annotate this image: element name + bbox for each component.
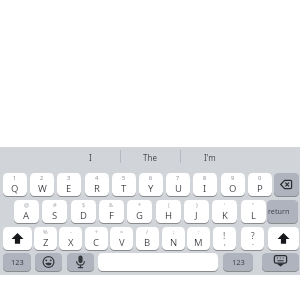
staticText: + xyxy=(95,228,99,235)
button[interactable]: 5 xyxy=(112,173,136,196)
staticText: D xyxy=(80,209,87,222)
staticText: - xyxy=(70,228,72,235)
button[interactable]: I'm xyxy=(182,148,238,166)
button[interactable]: * xyxy=(127,200,152,223)
button[interactable] xyxy=(98,253,218,271)
staticText: " xyxy=(252,201,255,208)
button[interactable]: $ xyxy=(71,200,96,223)
staticText: / xyxy=(146,228,149,235)
button[interactable]: ( xyxy=(156,200,181,223)
staticText: % xyxy=(43,228,48,235)
staticText: M xyxy=(194,236,203,249)
staticText: P xyxy=(257,182,263,195)
staticText: I xyxy=(89,152,92,163)
staticText: N xyxy=(170,236,178,249)
staticText: O xyxy=(229,182,237,195)
button[interactable]: @ xyxy=(14,200,39,223)
staticText: G xyxy=(136,209,143,222)
button[interactable]: 123 xyxy=(223,253,253,271)
button[interactable]: The xyxy=(122,148,178,166)
button[interactable]: # xyxy=(42,200,67,223)
staticText: I xyxy=(203,182,207,195)
button[interactable]: + xyxy=(85,227,108,250)
button[interactable] xyxy=(67,253,94,271)
staticText: T xyxy=(121,182,127,195)
staticText: & xyxy=(109,201,114,208)
button[interactable] xyxy=(268,227,299,250)
staticText: 5 xyxy=(122,174,126,181)
staticText: # xyxy=(53,201,57,208)
button[interactable]: 0 xyxy=(248,173,272,196)
staticText: @ xyxy=(24,201,29,208)
staticText: 4 xyxy=(95,174,99,181)
button[interactable]: 4 xyxy=(85,173,109,196)
staticText: . xyxy=(252,238,254,248)
button[interactable] xyxy=(3,227,32,250)
staticText: I'm xyxy=(204,152,216,163)
staticText: F xyxy=(109,209,114,222)
staticText: 0 xyxy=(258,174,262,181)
staticText: The xyxy=(143,152,157,163)
button[interactable]: = xyxy=(110,227,133,250)
button[interactable]: - xyxy=(59,227,82,250)
button[interactable]: ? xyxy=(241,227,264,250)
staticText: J xyxy=(195,209,198,222)
staticText: : xyxy=(198,228,200,235)
staticText: A xyxy=(23,209,30,222)
button[interactable]: / xyxy=(136,227,159,250)
staticText: W xyxy=(38,182,47,195)
staticText: ( xyxy=(168,201,170,208)
button[interactable]: : xyxy=(187,227,210,250)
staticText: ! xyxy=(223,230,226,242)
staticText: ' xyxy=(224,201,226,208)
staticText: X xyxy=(68,236,74,249)
staticText: 9 xyxy=(231,174,235,181)
staticText: K xyxy=(222,209,228,222)
staticText: ? xyxy=(251,230,255,242)
staticText: * xyxy=(138,201,142,208)
button[interactable]: 7 xyxy=(166,173,190,196)
button[interactable]: ) xyxy=(184,200,209,223)
staticText: S xyxy=(52,209,58,222)
staticText: return xyxy=(268,206,290,216)
staticText: 3 xyxy=(67,174,71,181)
staticText: Y xyxy=(148,182,154,195)
button[interactable]: return xyxy=(267,200,298,223)
button[interactable]: ; xyxy=(162,227,185,250)
button[interactable]: 6 xyxy=(139,173,163,196)
button[interactable]: 123 xyxy=(3,253,31,271)
button[interactable] xyxy=(35,253,62,271)
button[interactable]: 9 xyxy=(221,173,245,196)
staticText: H xyxy=(165,209,173,222)
staticText: ) xyxy=(196,201,198,208)
staticText: 123 xyxy=(11,257,24,267)
button[interactable]: ' xyxy=(212,200,237,223)
staticText: 7 xyxy=(176,174,180,181)
staticText: ; xyxy=(173,228,175,235)
staticText: E xyxy=(66,182,72,195)
button[interactable]: 8 xyxy=(193,173,217,196)
button[interactable]: ! xyxy=(213,227,236,250)
staticText: B xyxy=(144,236,151,249)
staticText: 123 xyxy=(232,257,245,267)
button[interactable]: 2 xyxy=(30,173,54,196)
staticText: Z xyxy=(43,236,49,249)
staticText: = xyxy=(120,228,124,235)
staticText: R xyxy=(94,182,100,195)
button[interactable] xyxy=(274,173,299,196)
button[interactable]: I xyxy=(62,148,118,166)
staticText: V xyxy=(119,236,125,249)
button[interactable]: & xyxy=(99,200,124,223)
staticText: Q xyxy=(11,182,19,195)
staticText: 1 xyxy=(13,174,17,181)
staticText: 2 xyxy=(40,174,44,181)
staticText: , xyxy=(224,238,226,248)
staticText: 6 xyxy=(149,174,153,181)
button[interactable]: % xyxy=(34,227,57,250)
staticText: L xyxy=(251,209,256,222)
button[interactable] xyxy=(262,253,299,271)
button[interactable]: " xyxy=(241,200,266,223)
button[interactable]: 1 xyxy=(3,173,27,196)
staticText: 8 xyxy=(203,174,207,181)
button[interactable]: 3 xyxy=(57,173,81,196)
